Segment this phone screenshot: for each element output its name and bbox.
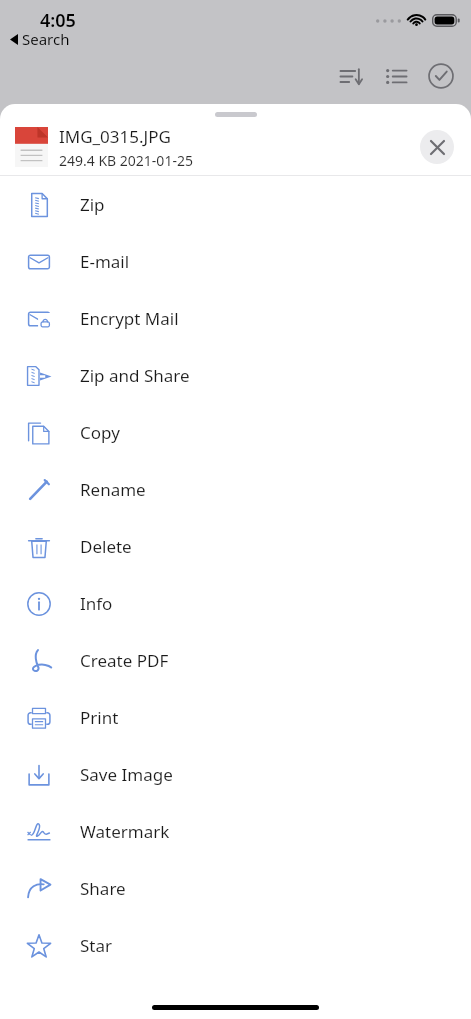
button[interactable]: Copy	[0, 404, 471, 461]
staticText: Info	[80, 592, 113, 615]
staticText: Create PDF	[80, 649, 169, 672]
button[interactable]: Info	[0, 575, 471, 632]
staticText: Encrypt Mail	[80, 307, 179, 330]
button[interactable]: Save Image	[0, 746, 471, 803]
staticText: Zip and Share	[80, 364, 190, 387]
button[interactable]: Rename	[0, 461, 471, 518]
staticText: Star	[80, 934, 113, 957]
button[interactable]: Zip and Share	[0, 347, 471, 404]
staticText: Share	[80, 877, 126, 900]
staticText: 249.4 KB 2021-01-25	[59, 151, 193, 170]
button[interactable]: Print	[0, 689, 471, 746]
staticText: E-mail	[80, 250, 130, 273]
staticText: Delete	[80, 535, 132, 558]
staticText: Search	[22, 29, 70, 49]
staticText: Watermark	[80, 820, 170, 843]
button[interactable]: Share	[0, 860, 471, 917]
staticText: Zip	[80, 193, 105, 216]
button[interactable]: Watermark	[0, 803, 471, 860]
button[interactable]: Create PDF	[0, 632, 471, 689]
staticText: Save Image	[80, 763, 173, 786]
staticText: Copy	[80, 421, 120, 444]
button[interactable]: List view	[378, 58, 414, 94]
button[interactable]: Close	[420, 130, 454, 164]
button[interactable]: Sort	[333, 58, 369, 94]
button[interactable]: Delete	[0, 518, 471, 575]
staticText: IMG_0315.JPG	[59, 125, 171, 148]
button[interactable]: E-mail	[0, 233, 471, 290]
staticText: Rename	[80, 478, 146, 501]
button[interactable]: Zip	[0, 176, 471, 233]
button[interactable]: Star	[0, 917, 471, 974]
button[interactable]: Encrypt Mail	[0, 290, 471, 347]
staticText: Print	[80, 706, 119, 729]
staticText: 4:05	[40, 8, 76, 33]
button[interactable]: Back to Search	[10, 29, 70, 49]
button[interactable]: Select	[423, 58, 459, 94]
